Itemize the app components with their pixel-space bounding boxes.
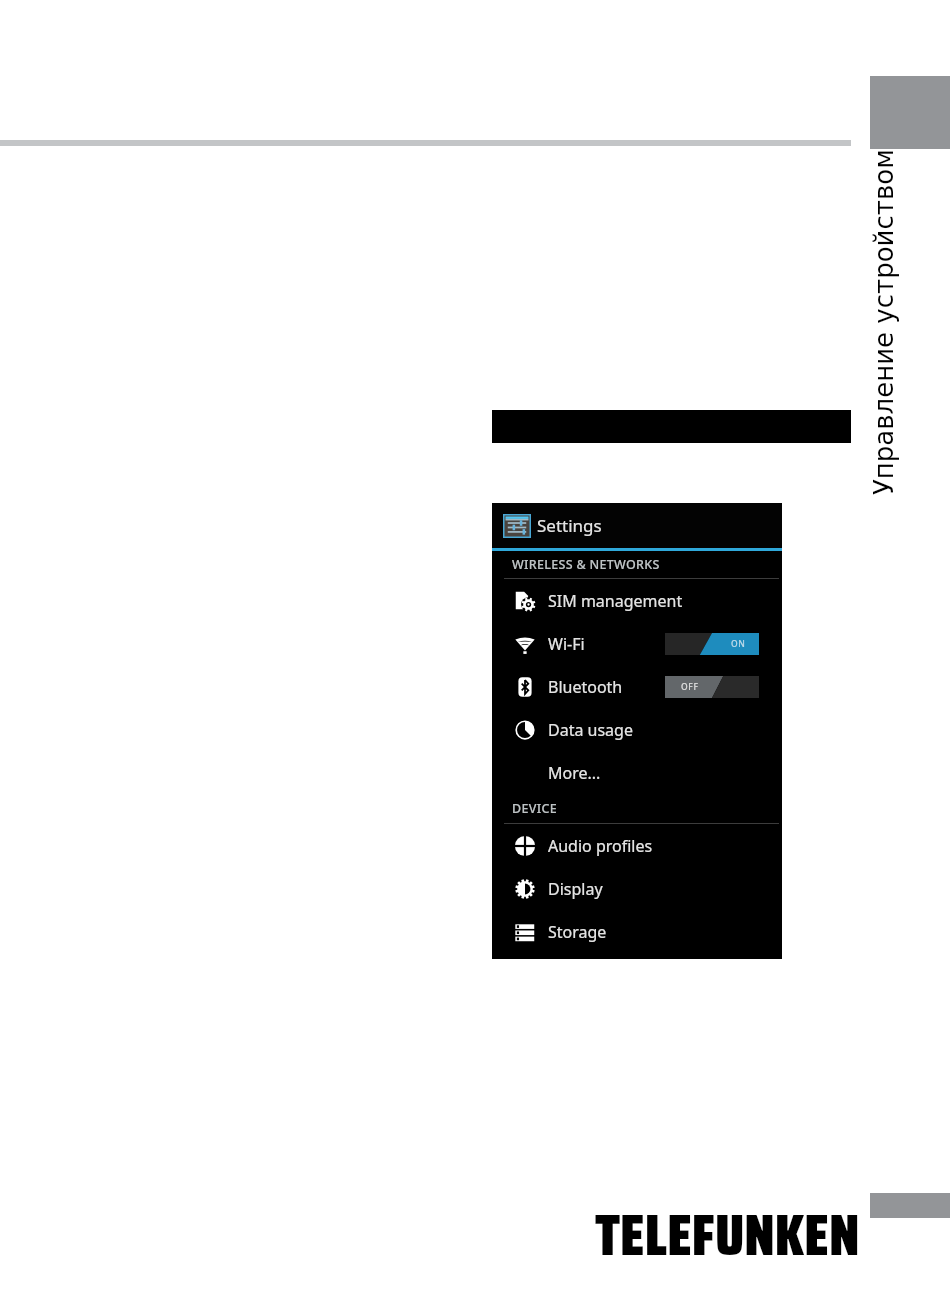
staticText: SIM management (548, 590, 683, 612)
staticText: WIRELESS & NETWORKS (512, 556, 660, 573)
staticText: Settings (537, 514, 602, 537)
staticText: ON (731, 638, 746, 650)
button[interactable]: Settings (492, 503, 782, 548)
button[interactable]: Wi-Fi (492, 622, 782, 665)
button[interactable]: Bluetooth (492, 665, 782, 708)
staticText: Bluetooth (548, 676, 623, 698)
button[interactable]: SIM management (492, 579, 782, 622)
staticText: OFF (681, 681, 699, 693)
button[interactable]: Audio profiles (492, 824, 782, 867)
staticText: DEVICE (512, 800, 557, 817)
staticText: Управление устройством (869, 149, 899, 495)
button[interactable]: More... (492, 751, 782, 794)
button[interactable]: Data usage (492, 708, 782, 751)
button[interactable]: Wi-Fi switch on (665, 633, 759, 655)
staticText: TELEFUNKEN (595, 1189, 860, 1257)
staticText: Storage (548, 921, 607, 943)
staticText: Audio profiles (548, 835, 653, 857)
staticText: Display (548, 878, 603, 900)
staticText: More... (548, 762, 601, 784)
staticText: Data usage (548, 719, 633, 741)
button[interactable]: Display (492, 867, 782, 910)
button[interactable]: Bluetooth switch off (665, 676, 759, 698)
staticText: Wi-Fi (548, 633, 585, 655)
button[interactable]: Storage (492, 910, 782, 953)
